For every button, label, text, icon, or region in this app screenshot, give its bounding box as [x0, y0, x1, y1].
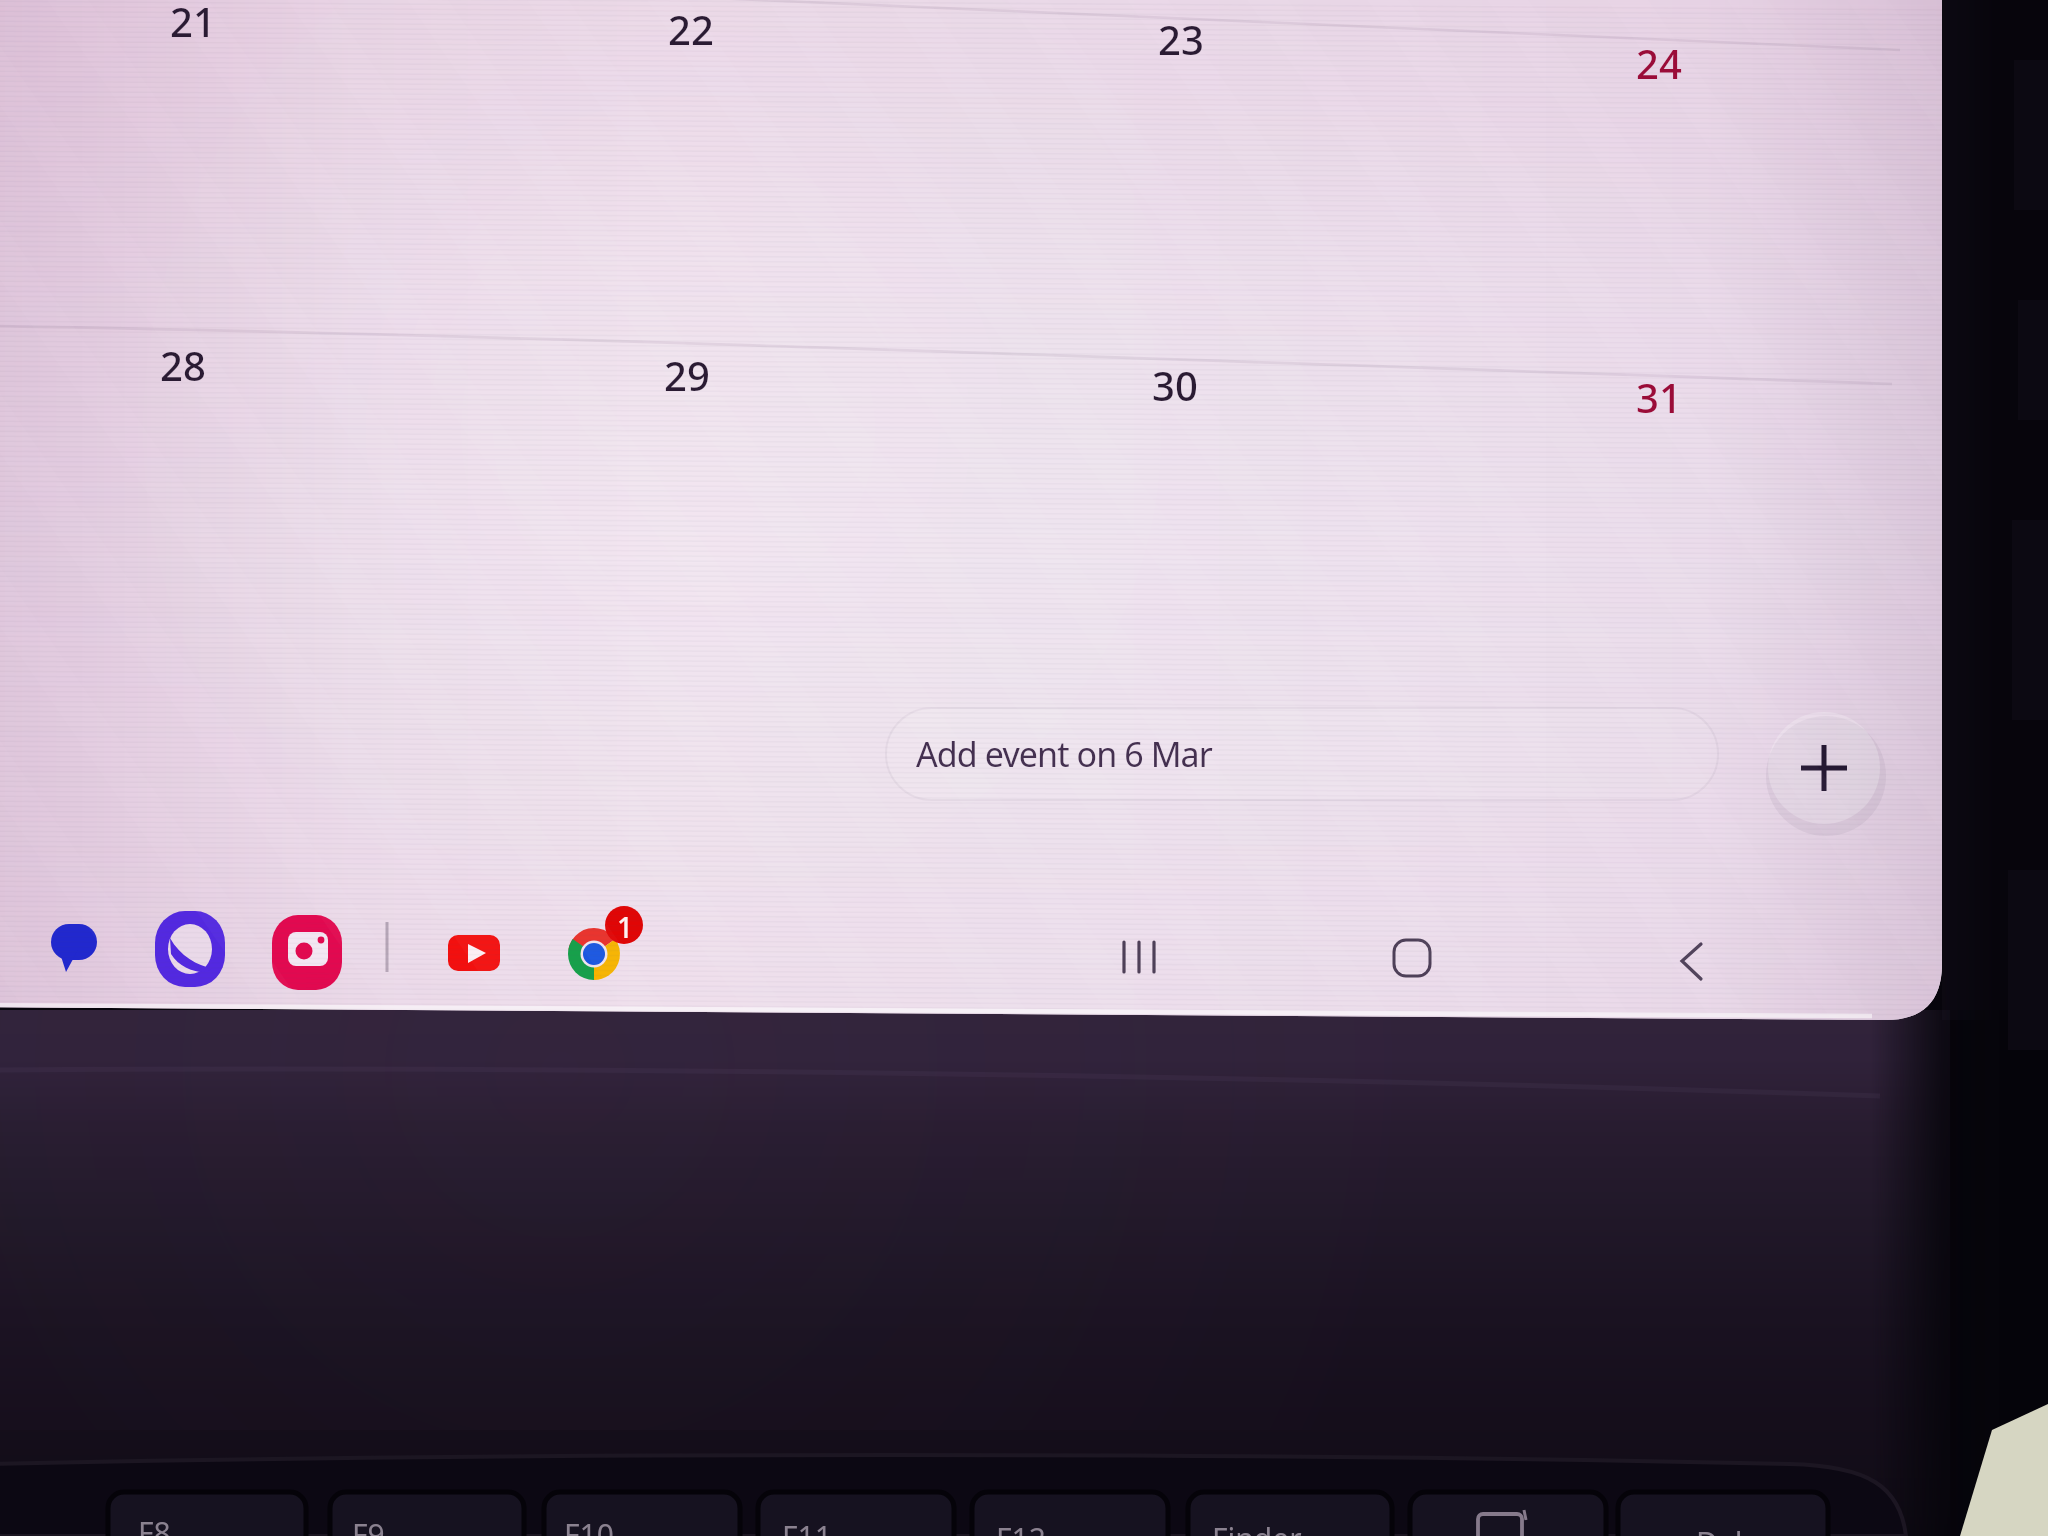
button[interactable]	[885, 704, 1723, 800]
staticText: F9	[352, 1514, 385, 1536]
button[interactable]: Recent apps	[1080, 900, 1200, 1020]
staticText: 21	[170, 0, 216, 48]
staticText: F10	[564, 1514, 614, 1536]
staticText: 22	[668, 2, 714, 56]
staticText: 24	[1636, 36, 1682, 90]
button[interactable]: Gallery	[268, 908, 352, 992]
staticText: 28	[160, 338, 206, 392]
staticText: 31	[1636, 370, 1682, 424]
staticText: Add event on 6 Mar	[916, 731, 1212, 777]
staticText: 23	[1158, 12, 1204, 66]
staticText: 1	[617, 908, 634, 946]
staticText: F8	[138, 1512, 171, 1536]
staticText: F12	[996, 1518, 1046, 1536]
staticText: 29	[664, 348, 710, 402]
button[interactable]: Chrome	[556, 902, 648, 994]
button[interactable]: Messages	[34, 912, 118, 996]
button[interactable]: Back	[1630, 900, 1750, 1020]
staticText: 30	[1152, 358, 1198, 412]
button[interactable]: YouTube	[436, 918, 516, 998]
button[interactable]: Samsung Internet	[150, 906, 236, 992]
staticText: Finder	[1212, 1518, 1302, 1536]
button[interactable]: Add event	[1766, 710, 1882, 826]
button[interactable]: Home	[1352, 900, 1472, 1020]
staticText: Del	[1696, 1522, 1743, 1536]
staticText: F11	[782, 1516, 832, 1536]
